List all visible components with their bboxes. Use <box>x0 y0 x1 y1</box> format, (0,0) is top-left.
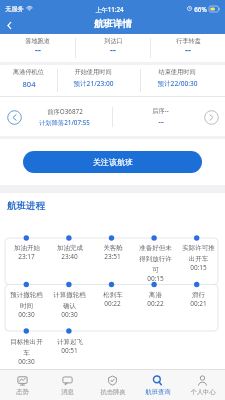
staticText: 预计撤轮档时间 <box>8 291 45 310</box>
staticText: 消息 <box>61 388 74 396</box>
staticText: 计算起飞 <box>57 338 83 346</box>
staticText: 前序O36872 <box>47 107 83 116</box>
button[interactable]: 结束使用时间 <box>141 68 213 96</box>
staticText: 23:40 <box>61 252 78 261</box>
button[interactable]: 航班查询 <box>135 370 180 400</box>
button[interactable]: 开始使用时间 <box>58 68 128 96</box>
staticText: 后序-- <box>152 106 169 115</box>
button[interactable]: 到达口 <box>76 37 150 62</box>
staticText: 00:15 <box>147 274 164 283</box>
staticText: 准备好但未得到放行许可 <box>137 244 174 274</box>
button[interactable]: 个人中心 <box>180 370 225 400</box>
staticText: 计算撤轮档确认 <box>51 291 88 310</box>
button[interactable]: 消息 <box>45 370 90 400</box>
staticText: 航班进程 <box>7 200 45 212</box>
button[interactable]: 行李转盘 <box>151 37 225 62</box>
staticText: 00:22 <box>147 299 164 308</box>
staticText: 计划降落21/07:55 <box>39 118 90 127</box>
staticText: 无服务 <box>5 5 24 13</box>
staticText: -- <box>35 43 41 55</box>
staticText: 00:51 <box>61 346 78 355</box>
button[interactable]: 加油开始 <box>8 244 45 261</box>
staticText: 结束使用时间 <box>158 68 196 76</box>
staticText: 滑行 <box>192 291 205 299</box>
staticText: 加油完成 <box>57 244 83 252</box>
button[interactable]: 预计撤轮档时间 <box>8 291 45 319</box>
staticText: 行李转盘 <box>176 37 201 45</box>
button[interactable]: 落地跑道 <box>0 37 75 62</box>
staticText: 加油开始 <box>14 244 40 252</box>
button[interactable]: 离港停机位 <box>0 68 57 96</box>
button[interactable]: 前序航班 <box>6 109 22 125</box>
staticText: 预计22/00:30 <box>157 79 198 88</box>
button[interactable]: 目标推出开车 <box>8 338 45 366</box>
button[interactable]: 关客舱 <box>94 244 131 261</box>
button[interactable]: 松刹车 <box>94 291 131 308</box>
button[interactable]: 返回 <box>0 16 18 34</box>
staticText: 00:15 <box>190 263 207 272</box>
staticText: 预计21/23:00 <box>73 79 114 88</box>
button[interactable]: 抗击肺炎 <box>90 370 135 400</box>
button[interactable]: 滑行 <box>180 291 217 308</box>
staticText: 个人中心 <box>190 388 216 396</box>
staticText: 00:30 <box>18 310 35 319</box>
staticText: 00:21 <box>190 299 207 308</box>
staticText: 开始使用时间 <box>74 68 112 76</box>
staticText: 松刹车 <box>103 291 123 299</box>
button[interactable]: 计算起飞 <box>51 338 88 355</box>
staticText: 00:30 <box>61 310 78 319</box>
button[interactable]: 前序航班 <box>0 97 112 136</box>
button[interactable]: 后序-- <box>113 97 225 136</box>
staticText: 态势 <box>16 388 29 396</box>
staticText: -- <box>158 116 164 128</box>
staticText: 航班详情 <box>94 18 132 30</box>
staticText: 23:17 <box>18 252 35 261</box>
staticText: 实际许可推出开车 <box>180 244 217 263</box>
staticText: 离港 <box>149 291 162 299</box>
staticText: 航班查询 <box>145 388 171 396</box>
staticText: 804 <box>22 79 36 89</box>
staticText: 00:30 <box>18 357 35 366</box>
staticText: 离港停机位 <box>13 68 44 76</box>
button[interactable]: 计算撤轮档确认 <box>51 291 88 319</box>
button[interactable]: 离港 <box>137 291 174 308</box>
staticText: 66% <box>194 5 207 13</box>
button[interactable]: 加油完成 <box>51 244 88 261</box>
staticText: 23:51 <box>104 252 121 261</box>
staticText: 关注该航班 <box>93 157 133 167</box>
button[interactable]: 关注该航班 <box>23 151 202 173</box>
staticText: -- <box>110 43 116 55</box>
button[interactable]: 实际许可推出开车 <box>180 244 217 272</box>
button[interactable]: 准备好但未得到放行许可 <box>137 244 174 283</box>
staticText: 关客舱 <box>103 244 123 252</box>
staticText: 抗击肺炎 <box>100 388 126 396</box>
button[interactable]: 后序航班 <box>203 109 219 125</box>
staticText: 到达口 <box>104 37 123 45</box>
button[interactable]: 态势 <box>0 370 45 400</box>
staticText: 上午11:24 <box>95 5 124 13</box>
staticText: 00:22 <box>104 299 121 308</box>
staticText: -- <box>185 43 191 55</box>
staticText: 落地跑道 <box>25 37 50 45</box>
staticText: 目标推出开车 <box>8 338 45 357</box>
